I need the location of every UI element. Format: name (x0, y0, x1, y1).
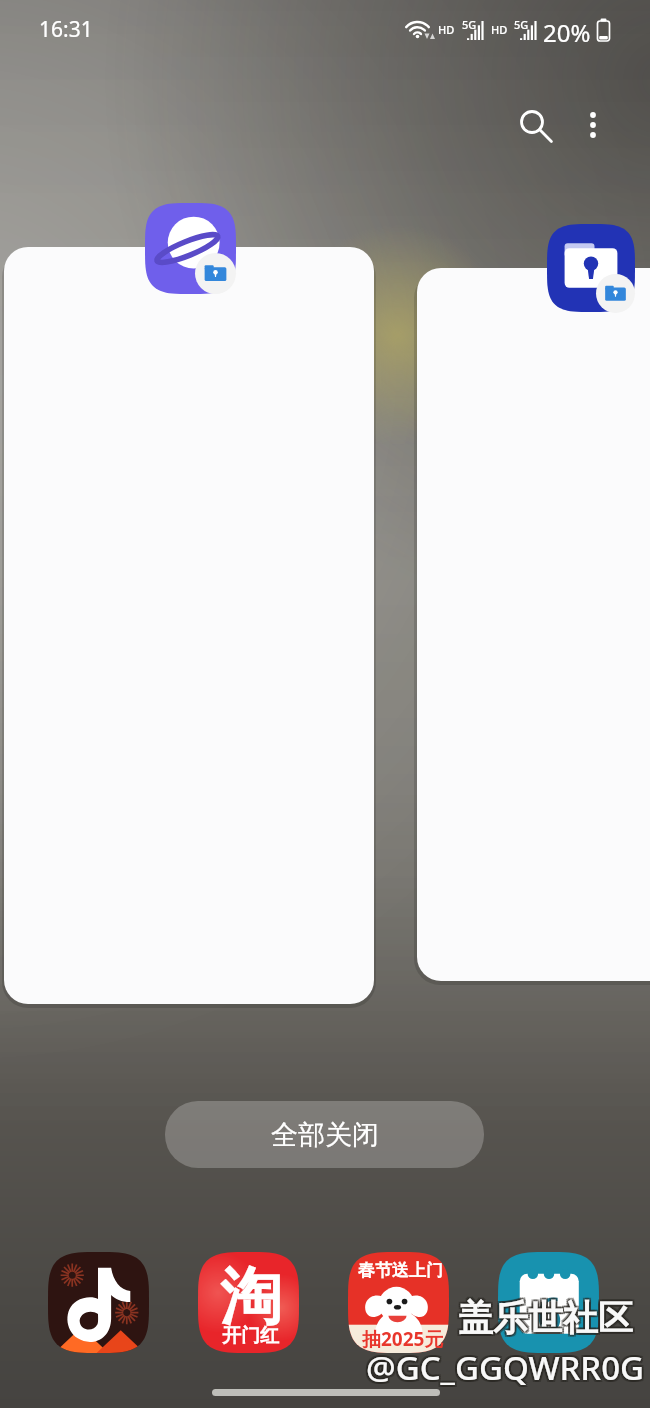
staticText: 5G (514, 17, 529, 32)
staticText: 16:31 (39, 15, 93, 44)
button[interactable]: Douyin (48, 1252, 149, 1353)
staticText: 盖乐世社区 (456, 1298, 631, 1342)
staticText: 20% (543, 16, 591, 49)
staticText: 6 (536, 1282, 563, 1345)
button[interactable]: Tickets (498, 1252, 599, 1353)
staticText: @GC_GGQWRR0G (368, 1345, 647, 1390)
staticText: 盖乐世社区 (460, 1298, 635, 1342)
staticText: 盖乐世社区 (460, 1294, 635, 1338)
staticText: @GC_GGQWRR0G (368, 1347, 647, 1392)
button[interactable]: JD (348, 1252, 449, 1353)
staticText: 盖乐世社区 (458, 1298, 633, 1342)
staticText: 淘 (220, 1258, 282, 1336)
staticText: @GC_GGQWRR0G (366, 1345, 645, 1390)
staticText: @GC_GGQWRR0G (364, 1343, 643, 1388)
button[interactable]: 全部关闭 (165, 1101, 484, 1168)
button[interactable] (417, 268, 650, 981)
staticText: @GC_GGQWRR0G (366, 1343, 645, 1388)
staticText: 春节送上门 (358, 1260, 443, 1281)
staticText: @GC_GGQWRR0G (364, 1345, 643, 1390)
staticText: HD (491, 22, 508, 37)
staticText: @GC_GGQWRR0G (368, 1343, 647, 1388)
button[interactable]: Taobao (198, 1252, 299, 1353)
button[interactable]: More options (566, 98, 620, 152)
staticText: 盖乐世社区 (456, 1296, 631, 1340)
staticText: 开门红 (222, 1324, 279, 1348)
staticText: 盖乐世社区 (458, 1296, 633, 1340)
staticText: 全部关闭 (271, 1118, 379, 1152)
staticText: 盖乐世社区 (460, 1296, 635, 1340)
staticText: 盖乐世社区 (456, 1294, 631, 1338)
staticText: @GC_GGQWRR0G (364, 1347, 643, 1392)
staticText: @GC_GGQWRR0G (366, 1347, 645, 1392)
staticText: 5G (462, 17, 477, 32)
button[interactable] (4, 247, 374, 1004)
staticText: HD (438, 22, 455, 37)
button[interactable]: Search (508, 98, 562, 152)
staticText: 抽2025元 (362, 1326, 444, 1352)
staticText: 盖乐世社区 (458, 1294, 633, 1338)
